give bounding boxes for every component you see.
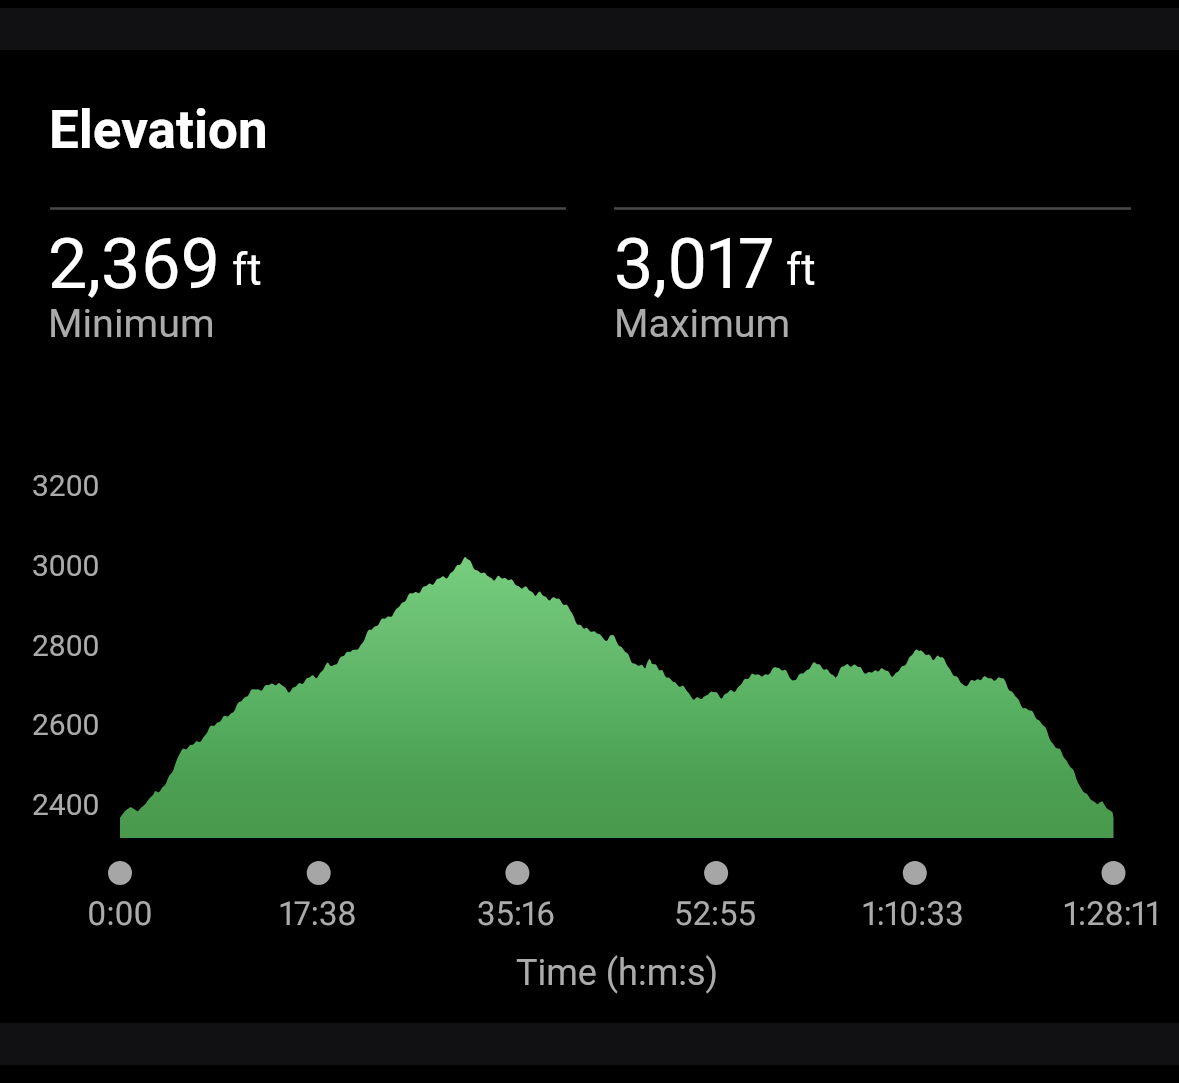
staticText: Time (h:m:s) [317, 952, 917, 994]
staticText: 3200 [32, 468, 100, 503]
staticText: ft [786, 244, 816, 296]
staticText: 3000 [32, 548, 100, 583]
staticText: 3,017 [614, 223, 775, 305]
staticText: 17:38 [218, 894, 418, 933]
button[interactable]: 2,369 [48, 210, 564, 340]
staticText: 2400 [32, 787, 100, 822]
staticText: Maximum [614, 300, 791, 346]
staticText: 2800 [32, 628, 100, 663]
staticText: Minimum [48, 300, 215, 346]
button[interactable]: 3,017 [614, 210, 1131, 340]
staticText: 1:10:33 [813, 894, 1013, 933]
staticText: Elevation [49, 99, 268, 161]
staticText: 2600 [32, 707, 100, 742]
staticText: 1:28:11 [1012, 894, 1179, 933]
staticText: ft [232, 244, 262, 296]
staticText: 35:16 [416, 894, 616, 933]
staticText: 52:55 [615, 894, 815, 933]
button[interactable]: Elevation profile chart [0, 440, 1179, 900]
staticText: 2,369 [48, 223, 221, 305]
staticText: 0:00 [20, 894, 220, 933]
